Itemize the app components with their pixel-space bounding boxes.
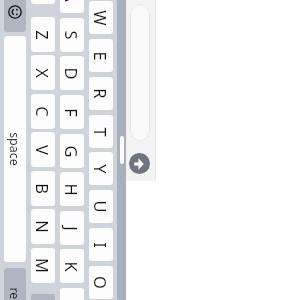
button[interactable]: R — [89, 77, 113, 110]
button[interactable]: J — [60, 211, 84, 245]
button[interactable]: F — [60, 95, 84, 129]
staticText: W — [90, 10, 112, 26]
button[interactable]: L — [60, 288, 84, 300]
button[interactable] — [130, 4, 150, 141]
staticText: N — [32, 220, 54, 233]
button[interactable]: space — [4, 36, 26, 262]
button[interactable]: D — [60, 56, 84, 90]
button[interactable]: O — [89, 266, 113, 299]
button[interactable]: E — [89, 39, 113, 72]
button[interactable]: H — [60, 172, 84, 206]
button[interactable]: B — [31, 171, 55, 206]
button[interactable]: G — [60, 134, 84, 168]
button[interactable]: C — [31, 94, 55, 129]
staticText: B — [32, 183, 54, 194]
staticText: G — [61, 145, 83, 158]
staticText: V — [32, 145, 54, 155]
staticText: M — [32, 258, 54, 273]
button[interactable]: Shift — [31, 0, 55, 4]
button[interactable]: W — [89, 1, 113, 34]
button[interactable]: X — [31, 55, 55, 90]
staticText: space — [6, 132, 23, 166]
button[interactable]: A — [60, 0, 84, 13]
staticText: C — [32, 106, 54, 117]
staticText: R — [90, 88, 112, 99]
staticText: H — [61, 183, 83, 196]
button[interactable]: V — [31, 132, 55, 167]
staticText: A — [61, 0, 83, 2]
staticText: X — [32, 68, 54, 78]
button[interactable]: K — [60, 249, 84, 283]
staticText: K — [61, 261, 83, 272]
button[interactable]: T — [89, 115, 113, 148]
button[interactable]: Y — [89, 152, 113, 185]
staticText: Y — [90, 164, 112, 174]
staticText: S — [61, 30, 83, 40]
button[interactable]: return — [4, 268, 26, 300]
button[interactable]: Backspace — [31, 294, 55, 300]
staticText: O — [90, 276, 112, 289]
staticText: T — [90, 127, 112, 137]
staticText: D — [61, 67, 83, 80]
button[interactable]: I — [89, 228, 113, 261]
staticText: U — [90, 200, 112, 213]
button[interactable]: M — [31, 248, 55, 283]
staticText: return — [6, 287, 23, 300]
button[interactable]: Emoji keyboard — [4, 0, 26, 32]
button[interactable]: S — [60, 18, 84, 52]
button[interactable]: U — [89, 190, 113, 223]
button[interactable]: Send message — [129, 153, 150, 174]
staticText: E — [90, 51, 112, 61]
button[interactable]: Z — [31, 17, 55, 52]
staticText: Z — [32, 30, 54, 40]
staticText: I — [90, 242, 112, 248]
staticText: F — [61, 108, 83, 117]
staticText: J — [61, 226, 83, 231]
button[interactable]: N — [31, 209, 55, 244]
